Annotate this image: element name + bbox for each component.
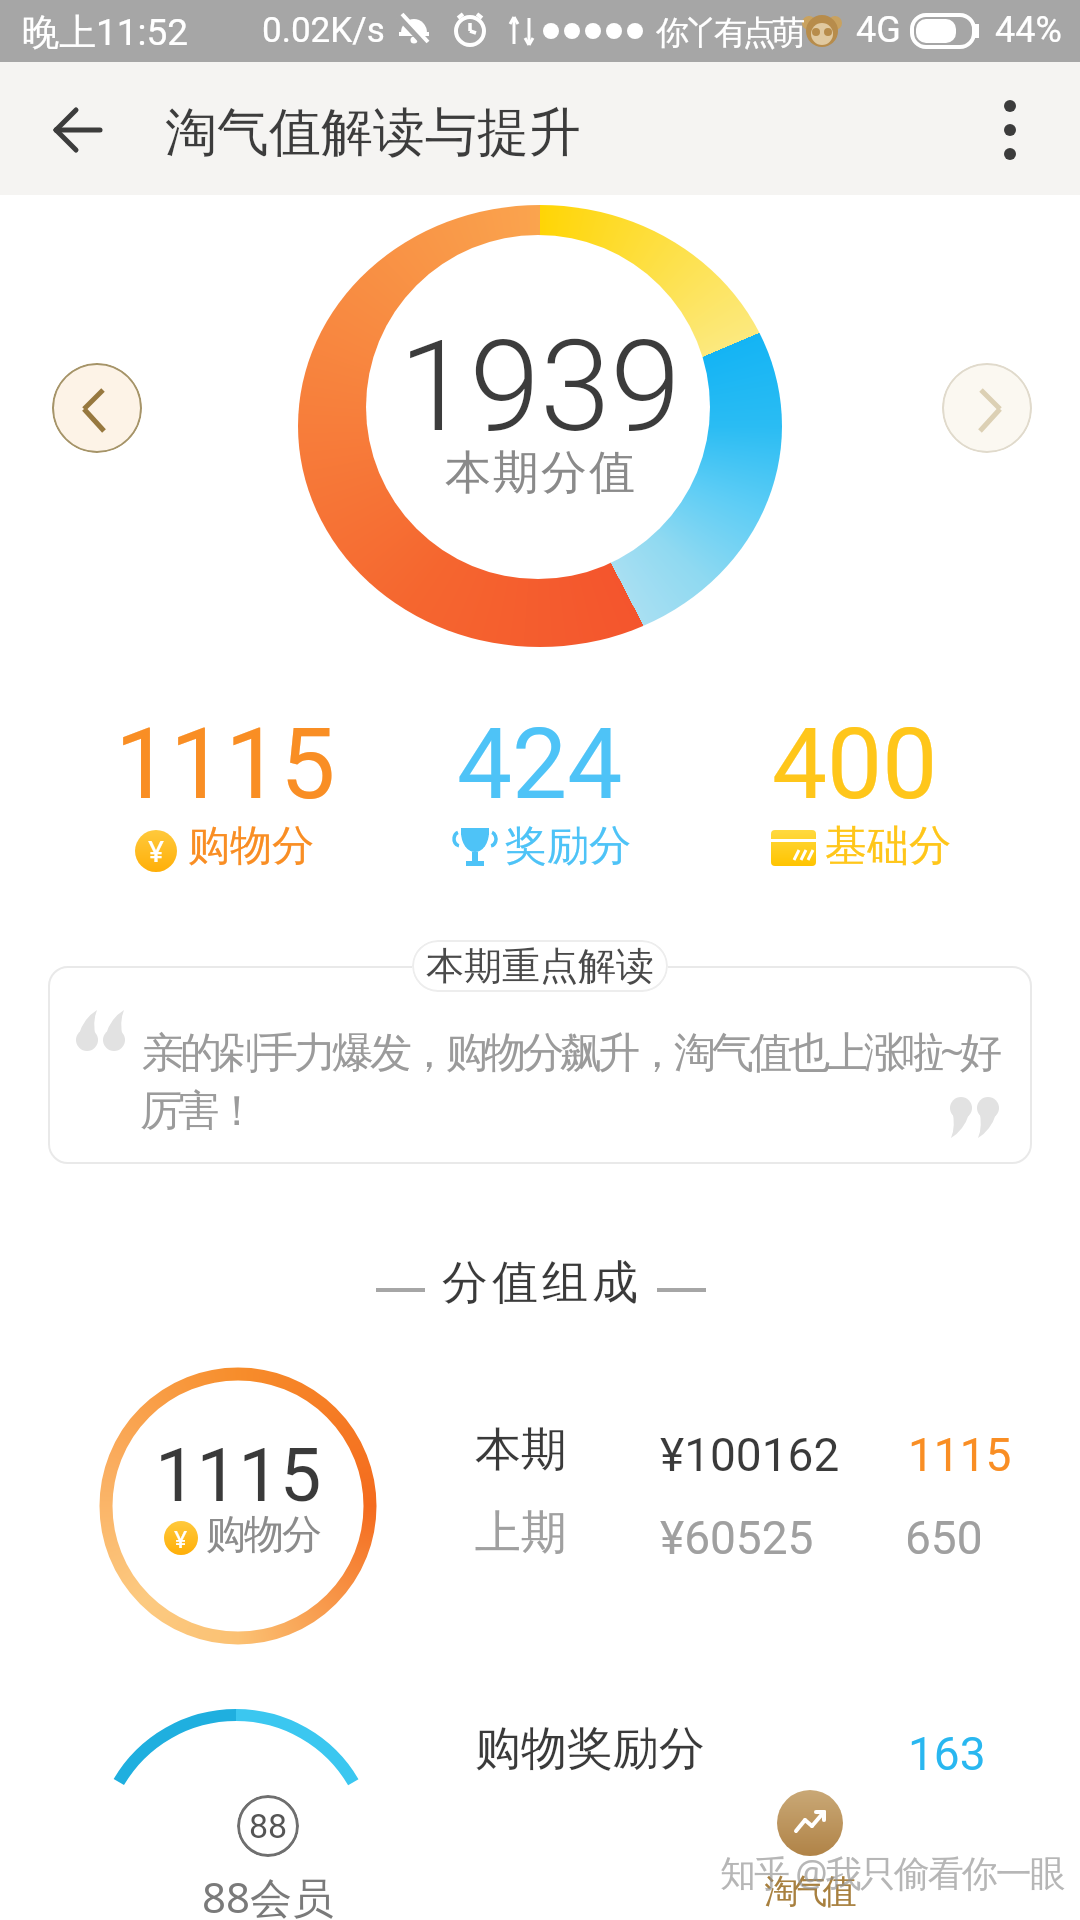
- staticText: 0.02K/s: [262, 10, 385, 51]
- staticText: 1115: [115, 707, 336, 822]
- staticText: 知乎 @我只偷看你一眼: [720, 1848, 1064, 1897]
- staticText: 44%: [995, 9, 1062, 51]
- staticText: 亲的剁手力爆发，购物分飙升，淘气值也上涨啦~好: [142, 1022, 999, 1079]
- staticText: 奖励分: [505, 820, 631, 873]
- staticText: 购物分: [188, 820, 314, 873]
- staticText: 163: [908, 1727, 986, 1781]
- staticText: 本期分值: [444, 444, 636, 502]
- button[interactable]: [38, 102, 118, 158]
- staticText: ¥60525: [660, 1511, 814, 1565]
- staticText: 88: [249, 1806, 288, 1846]
- staticText: 你丫有点萌: [658, 12, 803, 54]
- staticText: 424: [457, 707, 623, 822]
- staticText: 淘气值: [767, 1870, 854, 1913]
- staticText: 上期: [475, 1504, 567, 1562]
- button[interactable]: [777, 1790, 843, 1856]
- staticText: ¥100162: [660, 1428, 840, 1482]
- staticText: ¥: [148, 832, 165, 870]
- staticText: 分值组成: [440, 1254, 640, 1312]
- staticText: 400: [772, 707, 938, 822]
- button[interactable]: [975, 92, 1045, 168]
- staticText: 1115: [155, 1432, 322, 1519]
- staticText: 650: [905, 1511, 983, 1565]
- staticText: 淘气值解读与提升: [165, 100, 581, 166]
- staticText: 购物奖励分: [475, 1720, 705, 1778]
- staticText: 88会员: [202, 1868, 335, 1920]
- staticText: 4G: [856, 9, 901, 51]
- button[interactable]: [52, 363, 142, 453]
- button[interactable]: [942, 363, 1032, 453]
- staticText: 晚上11:52: [22, 9, 189, 56]
- staticText: 本期重点解读: [426, 942, 654, 990]
- staticText: ¥: [174, 1523, 188, 1554]
- staticText: 本期: [475, 1421, 567, 1479]
- staticText: 基础分: [825, 820, 951, 873]
- staticText: 1115: [908, 1428, 1012, 1482]
- staticText: 购物分: [207, 1509, 321, 1559]
- staticText: 1939: [399, 312, 681, 461]
- staticText: 厉害！: [142, 1085, 256, 1138]
